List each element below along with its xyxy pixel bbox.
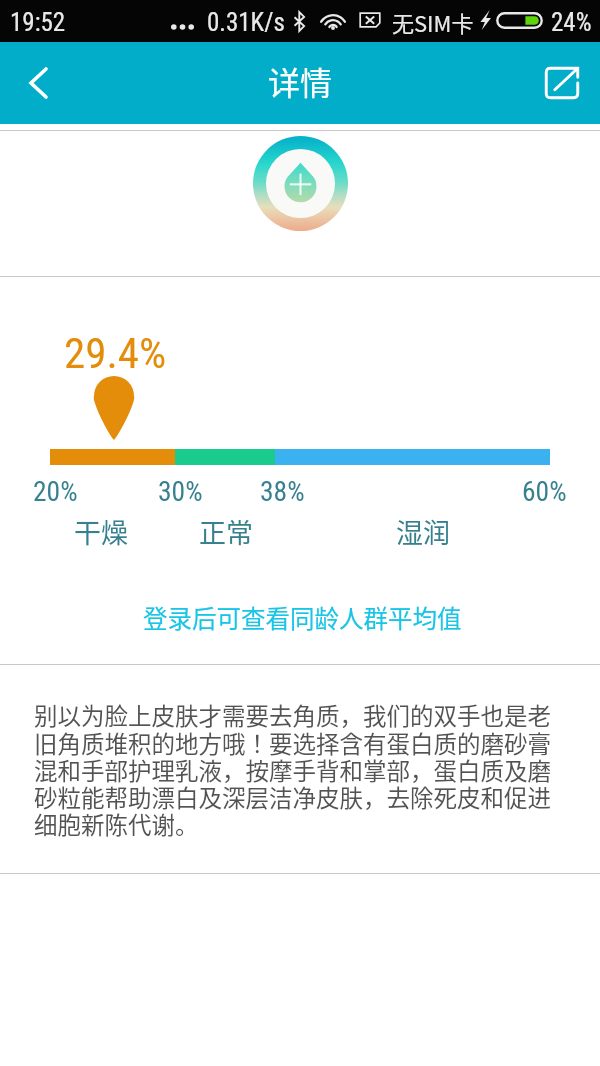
staticText: 湿润 <box>396 512 450 551</box>
staticText: 60% <box>522 475 567 507</box>
staticText: 正常 <box>199 512 253 551</box>
staticText: 0.31K/s <box>207 8 285 37</box>
staticText: 登录后可查看同龄人群平均值 <box>143 600 462 635</box>
button[interactable]: 登录后可查看同龄人群平均值 <box>119 592 486 643</box>
staticText: 24% <box>551 8 592 37</box>
staticText: 20% <box>33 475 78 507</box>
staticText: 干燥 <box>74 512 128 551</box>
staticText: 无SIM卡 <box>392 6 474 38</box>
staticText: 详情 <box>268 58 333 104</box>
staticText: 别以为脸上皮肤才需要去角质，我们的双手也是老旧角质堆积的地方哦！要选择含有蛋白质… <box>34 698 572 841</box>
staticText: 30% <box>158 475 203 507</box>
staticText: 19:52 <box>10 8 66 37</box>
staticText: 38% <box>260 475 305 507</box>
button[interactable]: Share <box>520 42 600 124</box>
button[interactable]: Back <box>0 42 84 124</box>
staticText: 29.4% <box>64 328 167 378</box>
